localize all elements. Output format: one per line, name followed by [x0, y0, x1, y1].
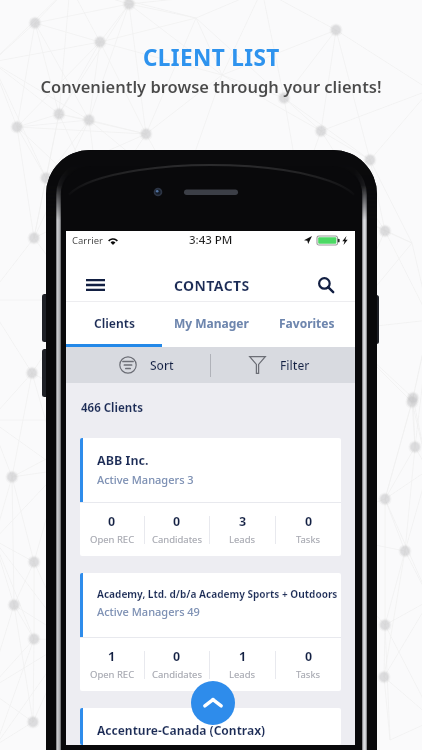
staticText: 0: [173, 648, 181, 665]
button[interactable]: Favorites: [259, 302, 355, 344]
staticText: Sort: [150, 357, 174, 373]
button[interactable]: My Manager: [163, 302, 259, 344]
button[interactable]: Clients: [66, 302, 163, 344]
staticText: Filter: [280, 357, 310, 373]
staticText: Active Managers 3: [97, 472, 194, 487]
button[interactable]: Scroll to top: [191, 681, 235, 725]
staticText: 0: [305, 513, 313, 530]
staticText: 0: [108, 513, 116, 530]
staticText: Open REC: [90, 533, 135, 546]
staticText: My Manager: [174, 315, 249, 331]
staticText: Accenture-Canada (Contrax): [97, 722, 266, 738]
staticText: 0: [173, 513, 181, 530]
staticText: 466 Clients: [81, 400, 144, 416]
staticText: Clients: [94, 315, 136, 331]
staticText: Favorites: [279, 315, 335, 331]
staticText: Candidates: [152, 533, 203, 546]
button[interactable]: Search: [296, 268, 355, 302]
button[interactable]: Filter: [211, 347, 356, 383]
staticText: Leads: [229, 533, 256, 546]
button[interactable]: Accenture-Canada (Contrax): [80, 708, 341, 745]
staticText: Tasks: [296, 533, 321, 546]
staticText: 1: [108, 648, 116, 665]
button[interactable]: Menu: [66, 268, 125, 302]
staticText: CONTACTS: [174, 276, 250, 295]
staticText: ABB Inc.: [97, 452, 149, 469]
staticText: Candidates: [152, 668, 203, 681]
button[interactable]: Academy, Ltd. d/b/a Academy Sports + Out…: [80, 573, 341, 691]
staticText: 1: [239, 648, 247, 665]
staticText: Carrier: [72, 234, 103, 247]
staticText: CLIENT LIST: [143, 42, 280, 73]
button[interactable]: Sort: [66, 347, 210, 383]
staticText: Open REC: [90, 668, 135, 681]
staticText: Academy, Ltd. d/b/a Academy Sports + Out…: [97, 587, 338, 601]
staticText: 0: [305, 648, 313, 665]
staticText: Tasks: [296, 668, 321, 681]
staticText: 3:43 PM: [189, 232, 233, 248]
button[interactable]: ABB Inc.: [80, 438, 341, 556]
staticText: 3: [239, 513, 247, 530]
staticText: Leads: [229, 668, 256, 681]
staticText: Conveniently browse through your clients…: [40, 75, 382, 97]
staticText: Active Managers 49: [97, 604, 200, 619]
